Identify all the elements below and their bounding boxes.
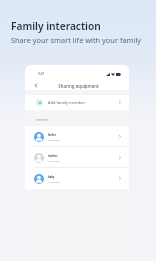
button[interactable]: father [25,126,129,147]
staticText: Add family member [48,100,86,105]
staticText: baby [48,175,55,179]
staticText: mother [48,154,58,158]
staticText: Family interaction [11,19,101,33]
staticText: 137****6493 [48,181,60,184]
staticText: 9:41 [38,72,45,76]
button[interactable]: Add family member [25,95,129,110]
staticText: 150****7766 [48,160,60,163]
button[interactable]: mother [25,147,129,168]
staticText: 138****5678 [48,139,60,142]
staticText: father [48,133,57,137]
staticText: member [36,118,49,122]
button[interactable]: Back [31,80,41,90]
button[interactable]: baby [25,168,129,189]
staticText: Sharing equipment [58,83,99,89]
staticText: Share your smart life with your family [11,35,142,45]
